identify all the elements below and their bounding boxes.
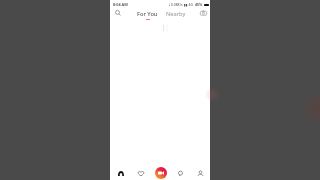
button[interactable]: Search bbox=[112, 7, 123, 18]
button[interactable]: Profile bbox=[192, 165, 208, 180]
button[interactable]: Camera bbox=[198, 7, 209, 18]
staticText: 8:04 AM bbox=[113, 2, 128, 7]
staticText: For You bbox=[137, 10, 158, 18]
staticText: 45% bbox=[195, 2, 203, 7]
button[interactable]: Record bbox=[153, 165, 169, 180]
staticText: ↓0.08K/s bbox=[168, 2, 183, 7]
button[interactable]: Nearby bbox=[166, 10, 187, 18]
button[interactable]: Likes bbox=[133, 165, 149, 180]
button[interactable]: Messages bbox=[172, 165, 188, 180]
button[interactable]: For You bbox=[135, 10, 160, 20]
button[interactable]: Home bbox=[113, 165, 129, 180]
staticText: ▮▮ 4G bbox=[184, 2, 194, 7]
